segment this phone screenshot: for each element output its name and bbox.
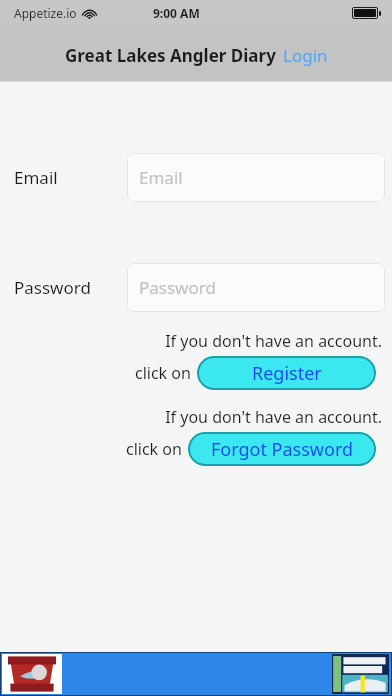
button[interactable]: Register <box>197 356 376 390</box>
staticText: 9:00 AM <box>153 5 200 21</box>
staticText: Password <box>14 276 91 299</box>
button[interactable]: Login <box>283 44 328 67</box>
staticText: If you don't have an account. <box>165 330 382 352</box>
staticText: Appetize.io <box>14 5 77 21</box>
button[interactable]: Forgot Password <box>188 432 376 466</box>
button[interactable]: Email <box>127 153 385 202</box>
staticText: click on <box>126 438 182 460</box>
staticText: Email <box>139 166 183 189</box>
button[interactable]: Advertisement banner <box>0 652 392 696</box>
staticText: Register <box>252 361 322 386</box>
staticText: Forgot Password <box>211 437 354 462</box>
button[interactable]: Password <box>127 263 385 312</box>
staticText: Email <box>14 166 58 189</box>
staticText: Great Lakes Angler Diary <box>65 44 276 67</box>
staticText: click on <box>135 362 191 384</box>
staticText: If you don't have an account. <box>165 406 382 428</box>
staticText: Password <box>139 276 216 299</box>
staticText: Login <box>283 44 328 67</box>
